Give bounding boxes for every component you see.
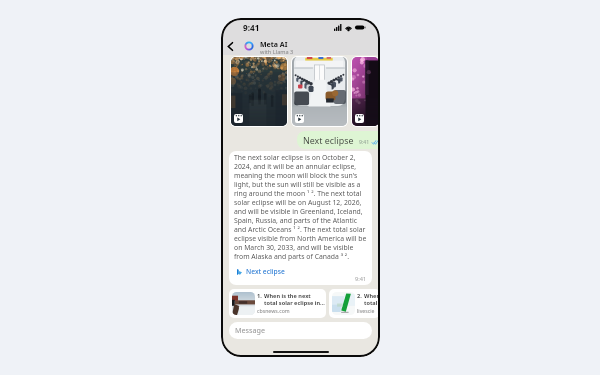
staticText: cbsnews.com — [257, 307, 290, 314]
button[interactable]: Next eclipse — [237, 267, 285, 276]
staticText: Next eclipse — [303, 134, 354, 146]
button[interactable]: Message — [229, 322, 372, 339]
button[interactable]: Video — [231, 57, 287, 126]
staticText: Message — [235, 325, 265, 335]
staticText: 9:41 — [243, 22, 260, 33]
staticText: 2. — [357, 292, 362, 300]
button[interactable]: Video — [292, 57, 347, 126]
staticText: 9:41 — [359, 138, 370, 145]
staticText: When is the next — [264, 292, 311, 300]
staticText: Next eclipse — [246, 267, 285, 276]
button[interactable]: The next solar eclipse is on October 2, … — [229, 151, 372, 285]
staticText: total solar eclipse in... — [364, 299, 380, 307]
staticText: total solar eclipse in... — [264, 299, 325, 307]
staticText: When is the next — [364, 292, 380, 300]
button[interactable]: 1. — [229, 289, 326, 318]
staticText: 9:41 — [355, 275, 367, 281]
button[interactable]: Back — [223, 39, 238, 54]
staticText: Meta AI — [260, 40, 288, 50]
staticText: with Llama 3 — [260, 48, 294, 56]
staticText: The next solar eclipse is on October 2, … — [234, 153, 367, 261]
staticText: 1. — [257, 292, 262, 300]
button[interactable]: Video — [352, 57, 379, 126]
staticText: livescience.com — [357, 307, 377, 314]
button[interactable]: 2. — [329, 289, 380, 318]
button[interactable]: Next eclipse — [297, 131, 380, 149]
